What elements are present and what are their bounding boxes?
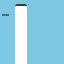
button[interactable]: [15, 4, 27, 64]
